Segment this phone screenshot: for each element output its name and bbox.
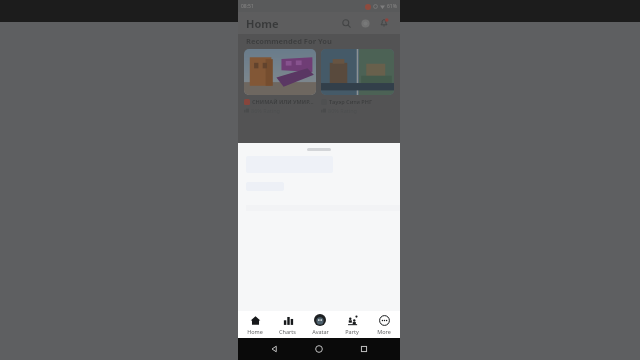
staticText: Charts bbox=[279, 328, 296, 335]
staticText: Avatar bbox=[312, 328, 329, 335]
button[interactable]: Notifications bbox=[376, 15, 392, 31]
button[interactable]: Avatar bbox=[304, 311, 336, 338]
staticText: 61% bbox=[387, 3, 397, 10]
staticText: Home bbox=[246, 16, 279, 31]
staticText: 08:51 bbox=[241, 3, 254, 10]
button[interactable]: Party bbox=[336, 311, 368, 338]
staticText: СНИМАЙ ИЛИ УМИР... bbox=[252, 98, 314, 105]
staticText: More bbox=[377, 328, 391, 335]
staticText: Home bbox=[247, 328, 263, 335]
button[interactable]: Back bbox=[265, 340, 283, 358]
button[interactable]: More bbox=[368, 311, 400, 338]
button[interactable]: Home bbox=[238, 311, 271, 338]
staticText: Recommended For You bbox=[246, 36, 332, 46]
button[interactable]: Тауэр Сити РНГ bbox=[321, 49, 394, 114]
staticText: Тауэр Сити РНГ bbox=[329, 98, 373, 105]
button[interactable]: Robux bbox=[357, 15, 373, 31]
staticText: Party bbox=[345, 328, 359, 335]
button[interactable]: Search bbox=[338, 15, 354, 31]
button[interactable]: Charts bbox=[271, 311, 304, 338]
button[interactable]: Home bbox=[310, 340, 328, 358]
button[interactable]: СНИМАЙ ИЛИ УМИР... bbox=[244, 49, 316, 114]
button[interactable]: Recents bbox=[355, 340, 373, 358]
